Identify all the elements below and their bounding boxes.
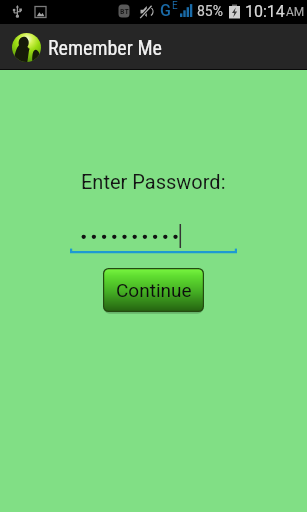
staticText: Enter Password: [81,170,226,193]
button[interactable] [70,221,237,253]
staticText: 85% [197,3,223,19]
staticText: BT [120,7,129,16]
staticText: Remember Me [48,36,162,59]
staticText: AM [286,5,305,19]
button[interactable]: Continue [103,268,204,313]
staticText: 10:14 [245,2,285,21]
staticText: Continue [116,279,192,301]
staticText: G [160,1,171,20]
staticText: E [172,0,178,12]
